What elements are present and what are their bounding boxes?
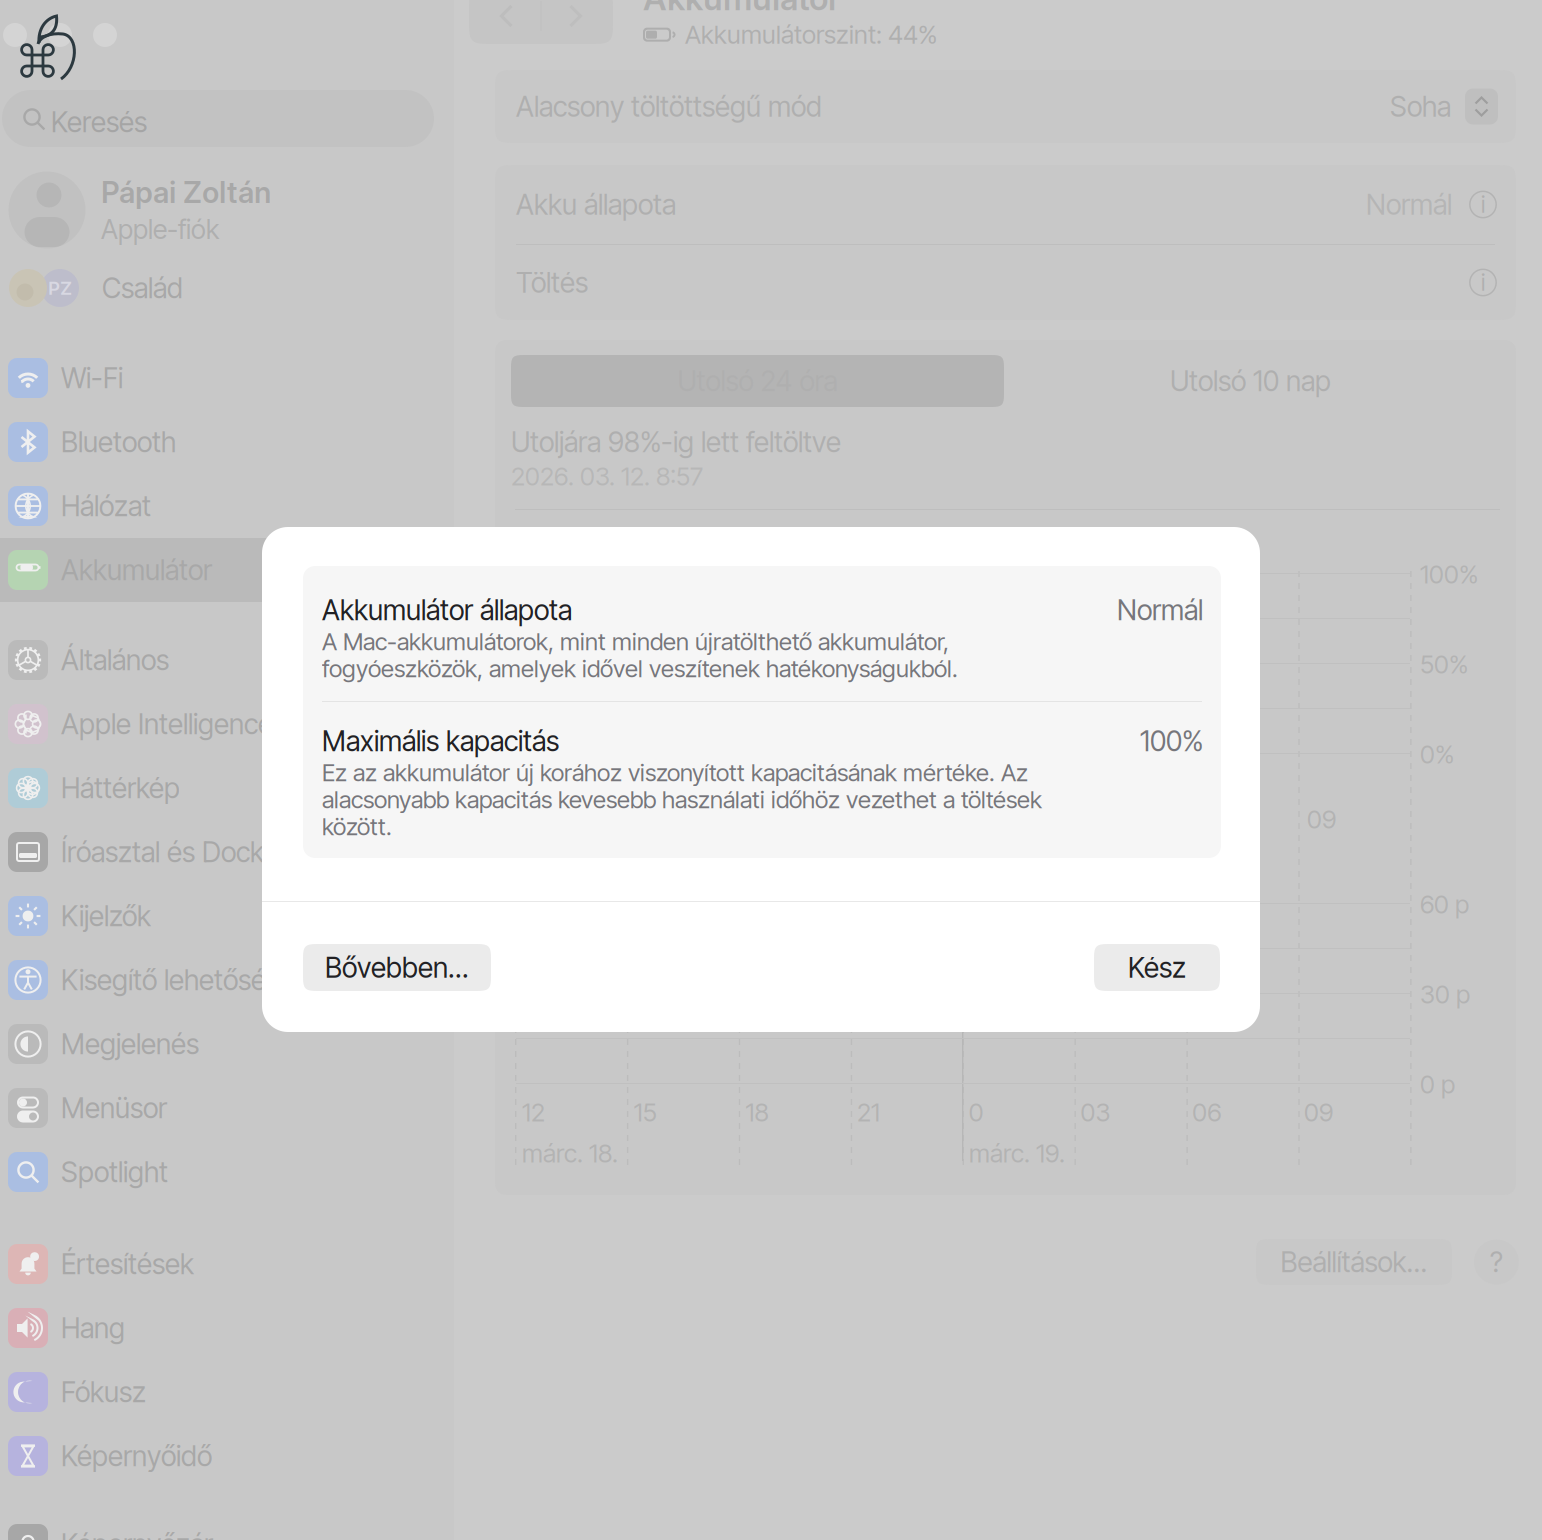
staticText: i xyxy=(1481,191,1485,218)
staticText: Spotlight xyxy=(61,1155,168,1189)
staticText: 15 xyxy=(634,1097,657,1128)
button[interactable]: Íróasztal és Dock xyxy=(0,820,454,884)
staticText: Pápai Zoltán xyxy=(101,175,271,210)
button[interactable]: Bluetooth xyxy=(0,410,454,474)
staticText: Család xyxy=(102,271,183,305)
staticText: Megjelenés xyxy=(61,1027,199,1061)
staticText: Normál xyxy=(1366,188,1452,221)
staticText: PZ xyxy=(48,277,72,299)
button[interactable]: Pápai Zoltán xyxy=(0,166,454,254)
staticText: Bluetooth xyxy=(61,425,176,459)
button[interactable]: Értesítések xyxy=(0,1232,454,1296)
staticText: i xyxy=(1481,269,1485,296)
staticText: 09 xyxy=(1307,804,1336,835)
staticText: márc. 19. xyxy=(969,1138,1065,1169)
staticText: Utolsó 10 nap xyxy=(1170,364,1331,398)
staticText: Hálózat xyxy=(61,489,151,523)
staticText: Kisegítő lehetőségek xyxy=(61,963,311,997)
button[interactable]: Spotlight xyxy=(0,1140,454,1204)
staticText: Ez az akkumulátor új korához viszonyítot… xyxy=(322,758,1042,841)
staticText: ? xyxy=(1490,1245,1503,1279)
button[interactable]: Hang xyxy=(0,1296,454,1360)
staticText: Beállítások... xyxy=(1280,1245,1427,1279)
staticText: 12 xyxy=(522,1097,545,1128)
staticText: Soha xyxy=(1390,90,1451,123)
staticText: 18 xyxy=(745,1097,768,1128)
staticText: Keresés xyxy=(51,105,147,139)
staticText: 09 xyxy=(1304,1097,1333,1128)
button[interactable]: Apple Intelligence xyxy=(0,692,454,756)
staticText: Íróasztal és Dock xyxy=(61,835,264,869)
staticText: 30 p xyxy=(1420,979,1470,1010)
button[interactable]: Menüsor xyxy=(0,1076,454,1140)
button[interactable]: Képernyőidő xyxy=(0,1424,454,1488)
staticText: Apple-fiók xyxy=(101,213,219,245)
button[interactable]: Hálózat xyxy=(0,474,454,538)
staticText: 100% xyxy=(1420,559,1478,590)
staticText: Akkumulátor xyxy=(643,0,840,18)
staticText: Akku állapota xyxy=(516,188,676,221)
button[interactable]: Általános xyxy=(0,628,454,692)
staticText: Fókusz xyxy=(61,1375,146,1409)
staticText: Utoljára 98%-ig lett feltöltve xyxy=(511,425,841,459)
staticText: 0% xyxy=(1420,739,1454,770)
staticText: A Mac-akkumulátorok, mint minden újratöl… xyxy=(322,627,958,683)
button[interactable]: Kijelzők xyxy=(0,884,454,948)
button[interactable]: Kisegítő lehetőségek xyxy=(0,948,454,1012)
button[interactable]: Bővebben... xyxy=(303,944,491,991)
staticText: Képernyőidő xyxy=(61,1439,212,1473)
staticText: Töltés xyxy=(516,266,588,299)
staticText: Kijelzők xyxy=(61,899,151,933)
staticText: Apple Intelligence xyxy=(61,707,273,741)
staticText: Értesítések xyxy=(61,1247,194,1281)
staticText: 03 xyxy=(1080,1097,1110,1128)
button[interactable]: Fókusz xyxy=(0,1360,454,1424)
button[interactable]: PZ xyxy=(0,260,454,316)
button[interactable]: Háttérkép xyxy=(0,756,454,820)
staticText: 100% xyxy=(1140,724,1203,758)
staticText: Akkumulátor xyxy=(61,553,212,587)
staticText: 06 xyxy=(1192,1097,1221,1128)
button[interactable]: Képernyőzár xyxy=(0,1512,454,1540)
staticText: Wi-Fi xyxy=(61,361,123,395)
staticText: Normál xyxy=(1117,593,1203,627)
staticText: 0 xyxy=(969,1097,984,1128)
staticText: Általános xyxy=(61,643,169,677)
staticText: Hang xyxy=(61,1311,125,1345)
staticText: Háttérkép xyxy=(61,771,180,805)
staticText: 2026. 03. 12. 8:57 xyxy=(511,461,703,492)
staticText: Képernyőzár xyxy=(61,1527,213,1540)
staticText: márc. 18. xyxy=(522,1138,618,1169)
staticText: Alacsony töltöttségű mód xyxy=(516,90,822,123)
button[interactable]: Wi-Fi xyxy=(0,346,454,410)
staticText: Akkumulátor állapota xyxy=(322,593,572,627)
staticText: Bővebben... xyxy=(325,951,469,984)
staticText: Menüsor xyxy=(61,1091,167,1125)
staticText: Akkumulátorszint: 44% xyxy=(685,19,937,50)
staticText: 0 p xyxy=(1420,1069,1455,1100)
button[interactable]: Akkumulátor xyxy=(0,538,454,602)
staticText: Maximális kapacitás xyxy=(322,724,559,758)
button[interactable]: Súgó xyxy=(1474,1239,1519,1284)
button[interactable]: Utolsó 10 nap xyxy=(1004,355,1497,407)
staticText: 21 xyxy=(857,1097,880,1128)
button[interactable]: Kész xyxy=(1094,944,1220,991)
staticText: 50% xyxy=(1420,649,1468,680)
staticText: 60 p xyxy=(1420,889,1469,920)
staticText: Kész xyxy=(1128,951,1186,984)
button[interactable]: Megjelenés xyxy=(0,1012,454,1076)
button[interactable]: Beállítások... xyxy=(1256,1239,1452,1285)
